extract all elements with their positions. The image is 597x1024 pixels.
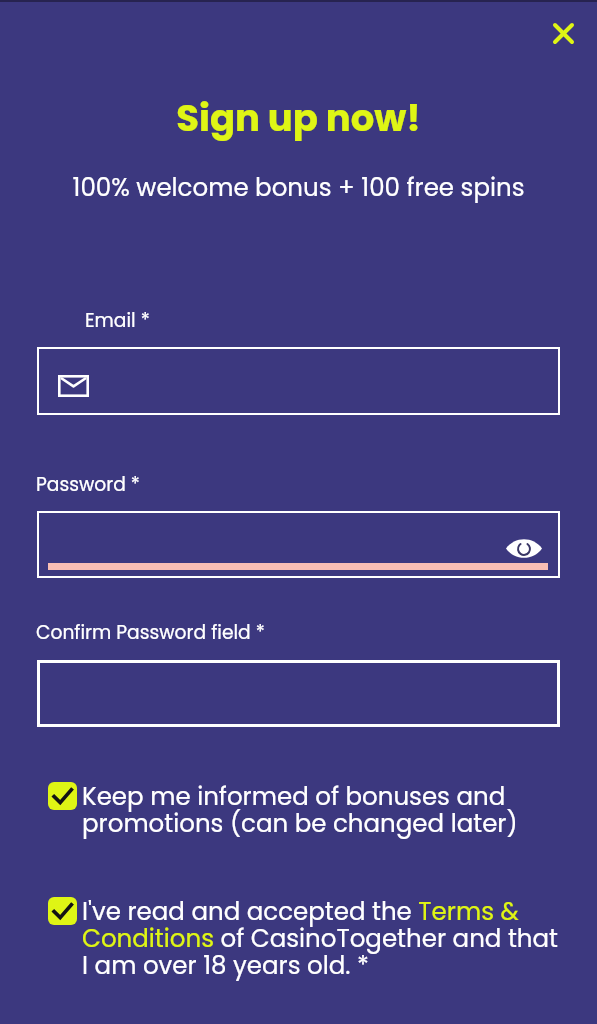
staticText: Confirm Password field * — [36, 619, 265, 645]
staticText: Email * — [85, 307, 150, 333]
staticText: 100% welcome bonus + 100 free spins — [0, 170, 597, 204]
button[interactable]: Password input field — [37, 511, 560, 578]
button[interactable]: Email input field — [37, 347, 560, 415]
button[interactable]: Keep me informed of bonuses and promotio… — [48, 779, 560, 841]
staticText: Password * — [36, 471, 140, 497]
staticText: Sign up now! — [0, 92, 597, 144]
staticText: I've read and accepted the Terms & Condi… — [82, 894, 560, 983]
button[interactable]: Confirm password input field — [37, 660, 560, 727]
button[interactable]: I've read and accepted the Terms & Condi… — [48, 894, 560, 983]
button[interactable]: Show password — [506, 538, 542, 559]
staticText: Keep me informed of bonuses and promotio… — [82, 779, 560, 841]
button[interactable]: Close — [541, 11, 586, 55]
